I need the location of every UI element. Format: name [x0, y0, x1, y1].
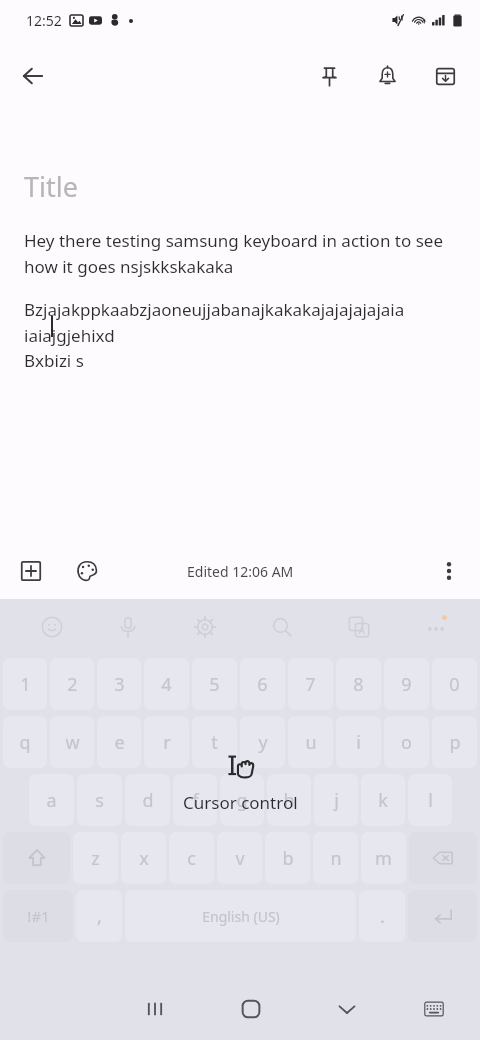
- button[interactable]: Archive: [422, 53, 468, 99]
- staticText: u: [305, 730, 317, 755]
- staticText: .: [380, 904, 385, 929]
- staticText: s: [95, 788, 104, 813]
- button[interactable]: Background colour: [64, 548, 110, 594]
- button[interactable]: d: [125, 774, 170, 826]
- staticText: ,: [97, 904, 102, 929]
- button[interactable]: Add: [8, 548, 54, 594]
- button[interactable]: t: [192, 716, 237, 768]
- staticText: English (US): [202, 907, 280, 926]
- button[interactable]: a: [29, 774, 74, 826]
- staticText: n: [330, 846, 342, 871]
- button[interactable]: 4: [144, 658, 189, 710]
- staticText: 2: [67, 672, 78, 697]
- button[interactable]: Add reminder: [364, 53, 410, 99]
- button[interactable]: Pin note: [306, 53, 352, 99]
- staticText: 9: [401, 672, 412, 697]
- button[interactable]: 7: [288, 658, 333, 710]
- button[interactable]: k: [361, 774, 405, 826]
- button[interactable]: 0: [432, 658, 477, 710]
- staticText: b: [282, 846, 294, 871]
- button[interactable]: f: [173, 774, 217, 826]
- staticText: z: [91, 846, 100, 871]
- staticText: !#1: [27, 906, 50, 926]
- staticText: o: [401, 730, 412, 755]
- staticText: 3: [114, 672, 125, 697]
- staticText: 4: [161, 672, 172, 697]
- button[interactable]: Shift: [3, 832, 70, 884]
- button[interactable]: Title: [0, 112, 480, 543]
- staticText: t: [211, 730, 218, 755]
- button[interactable]: 5: [192, 658, 237, 710]
- button[interactable]: y: [240, 716, 285, 768]
- button[interactable]: Back: [10, 53, 56, 99]
- staticText: 5: [209, 672, 220, 697]
- button[interactable]: p: [432, 716, 477, 768]
- staticText: m: [375, 846, 392, 871]
- staticText: Bzjajakppkaabzjaoneujjabanajkakakajajaja…: [24, 298, 456, 372]
- staticText: v: [235, 846, 245, 871]
- button[interactable]: 9: [384, 658, 429, 710]
- staticText: h: [283, 788, 295, 813]
- button[interactable]: i: [336, 716, 381, 768]
- staticText: Title: [24, 168, 78, 205]
- button[interactable]: u: [288, 716, 333, 768]
- button[interactable]: Home: [203, 978, 299, 1040]
- staticText: y: [258, 730, 268, 755]
- staticText: 12:52: [26, 11, 62, 30]
- button[interactable]: h: [267, 774, 311, 826]
- button[interactable]: b: [265, 832, 310, 884]
- button[interactable]: Translate: [320, 599, 397, 655]
- button[interactable]: English (US): [125, 890, 356, 942]
- staticText: i: [356, 730, 361, 755]
- button[interactable]: r: [144, 716, 189, 768]
- button[interactable]: 8: [336, 658, 381, 710]
- button[interactable]: Keyboard settings: [166, 599, 243, 655]
- button[interactable]: n: [313, 832, 358, 884]
- button[interactable]: v: [217, 832, 262, 884]
- button[interactable]: More keyboard options: [397, 599, 474, 655]
- button[interactable]: o: [384, 716, 429, 768]
- button[interactable]: !#1: [3, 890, 73, 942]
- staticText: Hey there testing samsung keyboard in ac…: [24, 229, 456, 278]
- button[interactable]: Backspace: [409, 832, 477, 884]
- staticText: p: [449, 730, 461, 755]
- button[interactable]: x: [121, 832, 166, 884]
- staticText: e: [114, 730, 125, 755]
- button[interactable]: q: [3, 716, 47, 768]
- staticText: f: [192, 788, 199, 813]
- staticText: Edited 12:06 AM: [187, 562, 294, 581]
- staticText: 7: [305, 672, 316, 697]
- staticText: Cursor control: [183, 791, 298, 814]
- button[interactable]: z: [73, 832, 118, 884]
- button[interactable]: 1: [3, 658, 47, 710]
- button[interactable]: 3: [97, 658, 141, 710]
- button[interactable]: More options: [426, 548, 472, 594]
- button[interactable]: Switch keyboard: [395, 978, 472, 1040]
- button[interactable]: w: [50, 716, 94, 768]
- button[interactable]: l: [408, 774, 452, 826]
- button[interactable]: s: [77, 774, 122, 826]
- staticText: l: [428, 788, 433, 813]
- staticText: 8: [353, 672, 364, 697]
- button[interactable]: e: [97, 716, 141, 768]
- button[interactable]: 2: [50, 658, 94, 710]
- button[interactable]: j: [314, 774, 358, 826]
- button[interactable]: c: [169, 832, 214, 884]
- button[interactable]: Hide keyboard: [299, 978, 395, 1040]
- staticText: r: [163, 730, 171, 755]
- button[interactable]: 6: [240, 658, 285, 710]
- staticText: 1: [20, 672, 31, 697]
- staticText: x: [139, 846, 149, 871]
- button[interactable]: Recents: [107, 978, 203, 1040]
- staticText: d: [142, 788, 154, 813]
- staticText: a: [46, 788, 57, 813]
- staticText: g: [236, 788, 248, 813]
- button[interactable]: g: [220, 774, 264, 826]
- button[interactable]: m: [361, 832, 406, 884]
